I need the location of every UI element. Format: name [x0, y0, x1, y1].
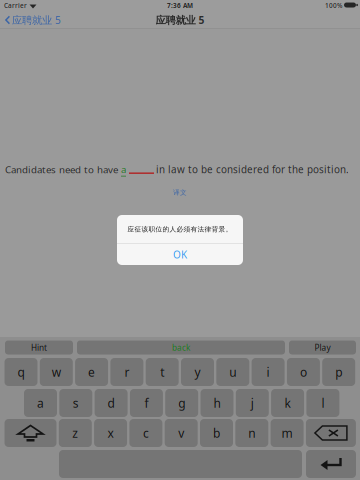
staticText: 应聘就业 5	[12, 13, 61, 27]
button[interactable]: back	[77, 340, 285, 354]
staticText: l	[321, 395, 324, 411]
button[interactable]: Shift	[4, 419, 56, 447]
staticText: k	[285, 395, 291, 411]
button[interactable]: d	[95, 389, 128, 417]
staticText: f	[144, 395, 148, 411]
staticText: p	[335, 364, 342, 380]
staticText: b	[213, 425, 220, 441]
button[interactable]: l	[306, 389, 339, 417]
button[interactable]: Delete	[306, 419, 356, 447]
staticText: n	[248, 425, 255, 441]
button[interactable]: z	[59, 419, 92, 447]
button[interactable]: p	[322, 358, 355, 386]
staticText: a	[37, 395, 44, 411]
button[interactable]: OK	[117, 244, 243, 265]
staticText: u	[229, 364, 236, 380]
staticText: a	[121, 162, 126, 176]
staticText: m	[282, 425, 293, 441]
button[interactable]: w	[40, 358, 73, 386]
staticText: back	[172, 342, 190, 353]
button[interactable]: e	[75, 358, 108, 386]
staticText: 7:36 AM	[167, 1, 193, 10]
button[interactable]: s	[59, 389, 92, 417]
staticText: 译文	[173, 188, 187, 197]
staticText: t	[160, 364, 164, 380]
button[interactable]: m	[271, 419, 304, 447]
staticText: e	[88, 364, 95, 380]
button[interactable]: n	[235, 419, 268, 447]
staticText: OK	[173, 248, 187, 261]
button[interactable]: h	[200, 389, 233, 417]
staticText: w	[52, 364, 61, 380]
button[interactable]: r	[110, 358, 143, 386]
staticText: Candidates need to have	[5, 163, 121, 176]
button[interactable]: a	[24, 389, 57, 417]
staticText: h	[213, 395, 220, 411]
staticText: in law to be considered for the position…	[156, 163, 349, 176]
button[interactable]: q	[4, 358, 37, 386]
button[interactable]: k	[271, 389, 304, 417]
button[interactable]: Play	[289, 340, 356, 354]
button[interactable]: u	[216, 358, 249, 386]
button[interactable]: 应聘就业 5	[0, 11, 67, 29]
staticText: 应征该职位的人必须有法律背景。	[127, 225, 232, 233]
button[interactable]: j	[236, 389, 269, 417]
button[interactable]: o	[287, 358, 320, 386]
staticText: g	[178, 395, 185, 411]
button[interactable]: Return	[306, 450, 356, 478]
button[interactable]: Hint	[5, 340, 73, 354]
staticText: 应聘就业 5	[155, 13, 204, 27]
button[interactable]: i	[252, 358, 285, 386]
staticText: d	[108, 395, 115, 411]
staticText: c	[143, 425, 149, 441]
staticText: Hint	[31, 342, 47, 353]
staticText: v	[178, 425, 184, 441]
button[interactable]: 译文	[162, 186, 198, 199]
button[interactable]: c	[129, 419, 162, 447]
staticText: Play	[314, 342, 330, 353]
staticText: z	[72, 425, 78, 441]
staticText: y	[194, 364, 200, 380]
staticText: x	[108, 425, 114, 441]
button[interactable]: v	[165, 419, 198, 447]
staticText: s	[73, 395, 79, 411]
staticText: 100%	[325, 1, 342, 10]
button[interactable]: y	[181, 358, 214, 386]
button[interactable]: x	[94, 419, 127, 447]
staticText: j	[251, 395, 254, 411]
staticText: o	[300, 364, 307, 380]
button[interactable]: t	[146, 358, 179, 386]
staticText: q	[17, 364, 24, 380]
button[interactable]: f	[130, 389, 163, 417]
staticText: Carrier	[4, 1, 27, 10]
staticText: r	[124, 364, 129, 380]
staticText: i	[267, 364, 270, 380]
button[interactable]: g	[165, 389, 198, 417]
button[interactable]: b	[200, 419, 233, 447]
